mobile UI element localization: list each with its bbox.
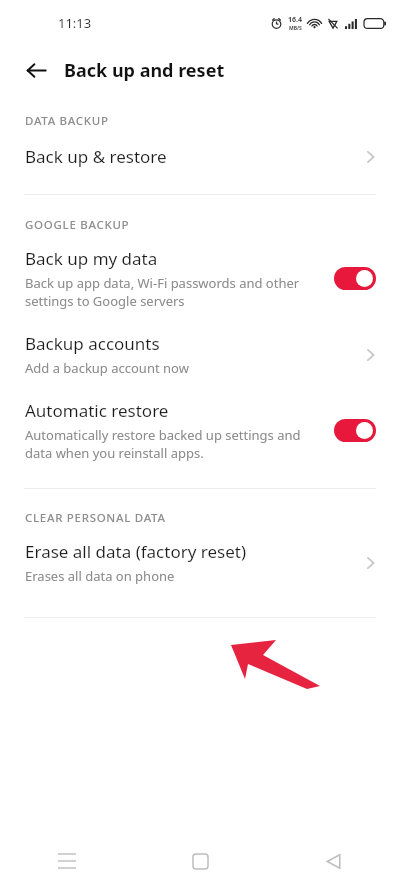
button[interactable]: Home [134, 833, 267, 889]
button[interactable]: Automatic restore [0, 399, 400, 462]
staticText: DATA BACKUP [25, 113, 109, 129]
staticText: Backup accounts [25, 332, 160, 355]
staticText: Back up and reset [64, 58, 225, 83]
button[interactable]: Back up my data [0, 247, 400, 310]
button[interactable]: Back [267, 833, 400, 889]
button[interactable]: Erase all data (factory reset) [0, 540, 400, 585]
staticText: 11:13 [58, 14, 92, 32]
staticText: Add a backup account now [25, 359, 189, 377]
staticText: CLEAR PERSONAL DATA [25, 510, 166, 526]
button[interactable]: Backup accounts [0, 332, 400, 377]
staticText: Back up app data, Wi-Fi passwords and ot… [25, 274, 300, 310]
staticText: GOOGLE BACKUP [25, 217, 130, 233]
staticText: Back up my data [25, 247, 158, 270]
button[interactable]: Toggle [334, 267, 376, 290]
button[interactable]: Toggle [334, 419, 376, 442]
button[interactable]: Back up & restore [0, 145, 400, 168]
staticText: Back up & restore [25, 145, 167, 168]
staticText: Automatic restore [25, 399, 169, 422]
button[interactable]: Recent apps [0, 833, 134, 889]
staticText: Erase all data (factory reset) [25, 540, 247, 563]
staticText: Automatically restore backed up settings… [25, 426, 301, 462]
staticText: Erases all data on phone [25, 567, 175, 585]
button[interactable]: Back [16, 50, 56, 90]
staticText: MB/S [289, 25, 302, 32]
staticText: 16.4 [288, 15, 302, 25]
